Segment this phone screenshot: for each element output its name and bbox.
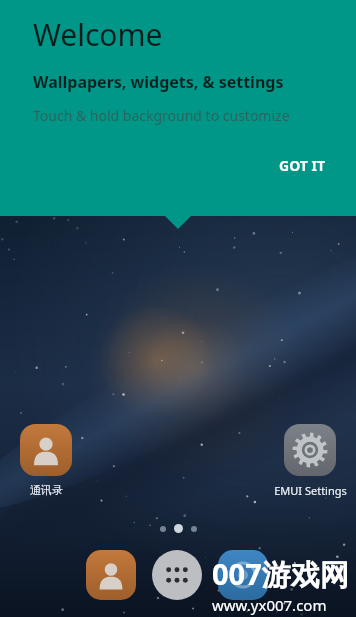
button[interactable]: 通讯录 [0, 424, 92, 497]
staticText: Wallpapers, widgets, & settings [33, 71, 284, 93]
button[interactable]: Camera [218, 550, 268, 600]
staticText: Touch & hold background to customize [33, 106, 290, 125]
button[interactable]: EMUI Settings [264, 424, 356, 498]
staticText: 通讯录 [30, 483, 63, 497]
button[interactable] [86, 550, 136, 600]
staticText: Welcome [33, 14, 163, 55]
button[interactable]: App drawer [152, 550, 202, 600]
staticText: GOT IT [279, 156, 326, 175]
staticText: 007游戏网 [212, 554, 349, 594]
staticText: EMUI Settings [274, 483, 347, 498]
staticText: www.yx007.com [212, 595, 327, 615]
button[interactable]: GOT IT [267, 148, 338, 183]
